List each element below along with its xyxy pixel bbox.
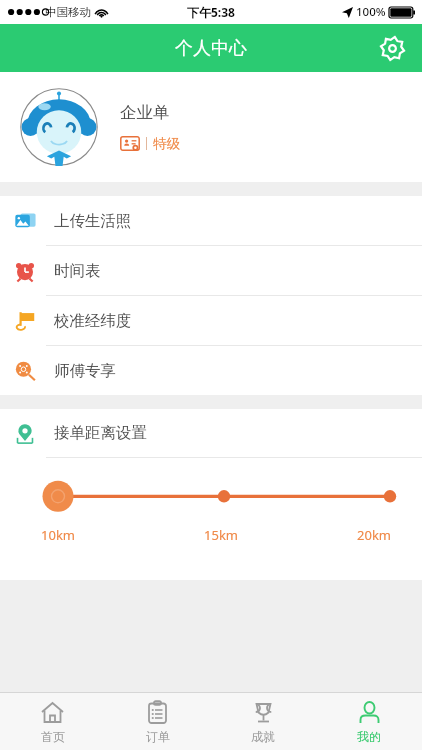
staticText: 校准经纬度	[54, 311, 132, 331]
button[interactable]: 企业单	[0, 72, 422, 182]
staticText: 下午5:38	[187, 4, 235, 20]
staticText: 上传生活照	[54, 211, 132, 231]
button[interactable]: 成就	[210, 693, 316, 750]
button[interactable]: 订单	[105, 693, 210, 750]
staticText: 订单	[146, 729, 170, 744]
button[interactable]: 师傅专享	[0, 346, 422, 395]
staticText: 时间表	[54, 261, 101, 281]
staticText: 20km	[326, 526, 422, 544]
button[interactable]: 上传生活照	[0, 196, 422, 246]
staticText: 接单距离设置	[54, 423, 147, 443]
button[interactable]: 我的	[316, 693, 422, 750]
staticText: 师傅专享	[54, 361, 116, 381]
button[interactable]: 首页	[0, 693, 105, 750]
staticText: 首页	[41, 729, 65, 744]
staticText: 我的	[357, 729, 381, 744]
staticText: 个人中心	[175, 37, 247, 60]
button[interactable]: 校准经纬度	[0, 296, 422, 346]
staticText: 中国移动	[45, 5, 91, 19]
button[interactable]: 10km	[0, 482, 422, 546]
staticText: 100%	[356, 4, 386, 20]
staticText: 10km	[0, 526, 116, 544]
staticText: 成就	[251, 729, 275, 744]
button[interactable]: 接单距离设置	[0, 409, 422, 457]
staticText: 特级	[153, 135, 180, 152]
button[interactable]: 时间表	[0, 246, 422, 296]
staticText: 15km	[116, 526, 326, 544]
button[interactable]: Settings	[372, 28, 412, 68]
staticText: 企业单	[120, 102, 170, 123]
